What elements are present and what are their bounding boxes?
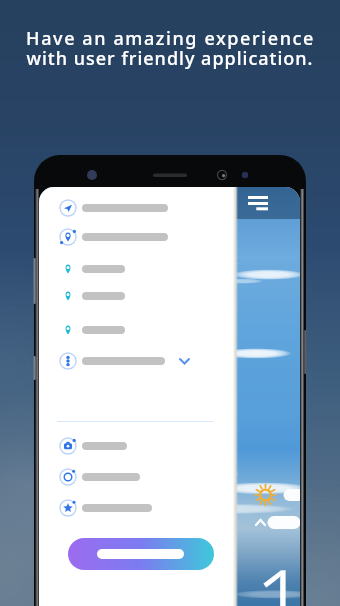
staticText: Have an amazing experience bbox=[26, 26, 315, 51]
button[interactable] bbox=[59, 465, 229, 489]
button[interactable] bbox=[59, 434, 229, 458]
button[interactable] bbox=[59, 257, 229, 281]
button[interactable] bbox=[59, 284, 229, 308]
button[interactable] bbox=[59, 496, 229, 520]
staticText: 1 bbox=[255, 539, 300, 606]
button[interactable]: Menu bbox=[248, 196, 269, 211]
staticText: with user friendly application. bbox=[26, 46, 314, 71]
button[interactable] bbox=[59, 225, 229, 249]
button[interactable] bbox=[59, 349, 229, 373]
button[interactable] bbox=[59, 196, 229, 220]
button[interactable] bbox=[68, 538, 214, 570]
button[interactable] bbox=[59, 318, 229, 342]
